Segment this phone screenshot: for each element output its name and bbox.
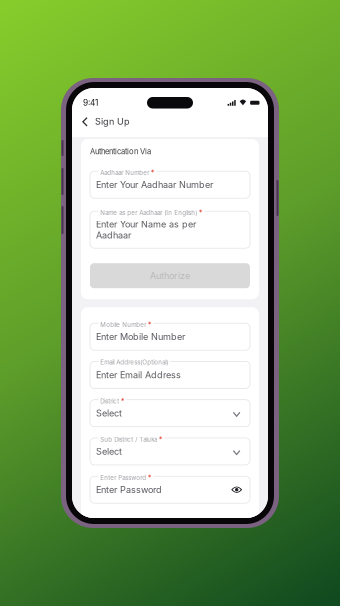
staticText: Mobile Number xyxy=(100,321,146,328)
staticText: Enter Your Aadhaar Number xyxy=(96,179,213,190)
staticText: Authentication Via xyxy=(90,147,151,156)
staticText: Enter Your Name as per Aadhaar xyxy=(96,219,196,241)
staticText: Enter Mobile Number xyxy=(96,331,185,342)
staticText: Authorize xyxy=(150,270,190,281)
staticText: Sign Up xyxy=(95,116,130,127)
button[interactable]: Sign Up xyxy=(72,112,268,137)
staticText: * xyxy=(148,320,152,329)
staticText: Name as per Aadhaar (In English) xyxy=(100,209,197,216)
staticText: Select xyxy=(96,408,122,419)
staticText: Enter Password xyxy=(96,484,162,495)
staticText: Enter Email Address xyxy=(96,369,181,380)
staticText: Sub District / Taluka xyxy=(100,436,157,443)
staticText: Enter Password xyxy=(100,474,146,481)
staticText: 9:41 xyxy=(83,98,98,108)
button[interactable]: Authorize xyxy=(90,263,250,288)
staticText: * xyxy=(148,473,152,482)
staticText: * xyxy=(151,168,155,177)
staticText: Email Address(Optional) xyxy=(100,358,168,366)
staticText: Select xyxy=(96,446,122,457)
staticText: Aadhaar Number xyxy=(100,169,149,176)
staticText: * xyxy=(199,208,203,217)
staticText: * xyxy=(159,435,163,444)
staticText: District xyxy=(100,397,119,405)
staticText: * xyxy=(121,397,125,406)
